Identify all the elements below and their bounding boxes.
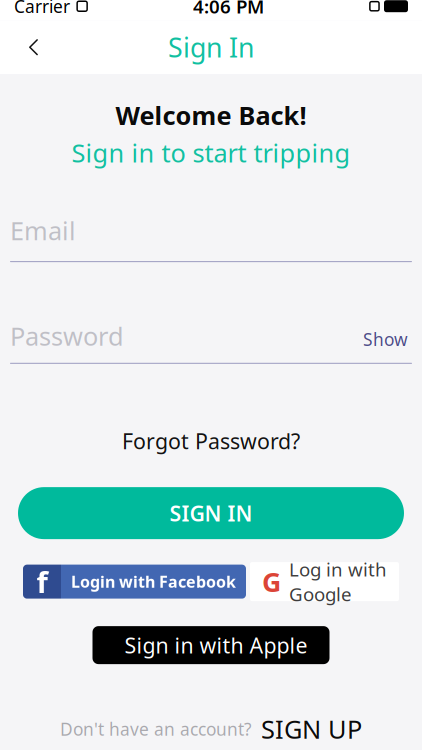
staticText [70, 0, 75, 18]
staticText: Email [10, 213, 76, 247]
staticText: 4:06 PM [193, 0, 264, 19]
staticText: Don't have an account? [60, 717, 252, 740]
staticText: SIGN UP [261, 712, 362, 746]
staticText: Welcome Back! [115, 98, 306, 132]
staticText: Sign in with Apple [124, 631, 307, 659]
button[interactable]: Don't have an account? [52, 708, 370, 750]
staticText: Login with Facebook [71, 571, 236, 592]
staticText: SIGN IN [169, 499, 252, 527]
button[interactable]: SIGN IN [18, 487, 404, 539]
button[interactable]: Back [12, 25, 56, 69]
staticText: Password [10, 319, 124, 353]
staticText: Show [363, 328, 408, 351]
button[interactable]: Show [359, 326, 412, 353]
button[interactable]: f [23, 565, 246, 599]
button[interactable] [92, 626, 329, 664]
staticText: Carrier [14, 0, 70, 18]
staticText: f [36, 562, 47, 601]
staticText: Log in with Google [289, 557, 387, 606]
staticText: Forgot Password? [122, 427, 300, 455]
staticText: Sign In [168, 29, 254, 65]
button[interactable]: Forgot Password? [112, 422, 310, 460]
staticText: G [262, 564, 281, 599]
staticText: Sign in to start tripping [71, 136, 350, 169]
button[interactable]: G [250, 562, 399, 601]
